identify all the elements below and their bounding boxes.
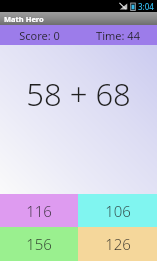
button[interactable]: 116	[0, 194, 78, 227]
staticText: Math Hero	[4, 14, 44, 24]
staticText: 106	[105, 201, 131, 221]
staticText: 116	[26, 201, 52, 221]
staticText: Time: 44	[96, 28, 140, 43]
staticText: Score: 0	[19, 28, 60, 43]
button[interactable]: 156	[0, 227, 78, 261]
staticText: 3:04	[138, 1, 154, 12]
button[interactable]: 106	[78, 194, 157, 227]
staticText: 126	[105, 234, 131, 254]
staticText: 156	[26, 234, 52, 254]
staticText: 58 + 68	[26, 73, 131, 115]
button[interactable]: Score: 0	[0, 25, 157, 45]
button[interactable]: 126	[78, 227, 157, 261]
